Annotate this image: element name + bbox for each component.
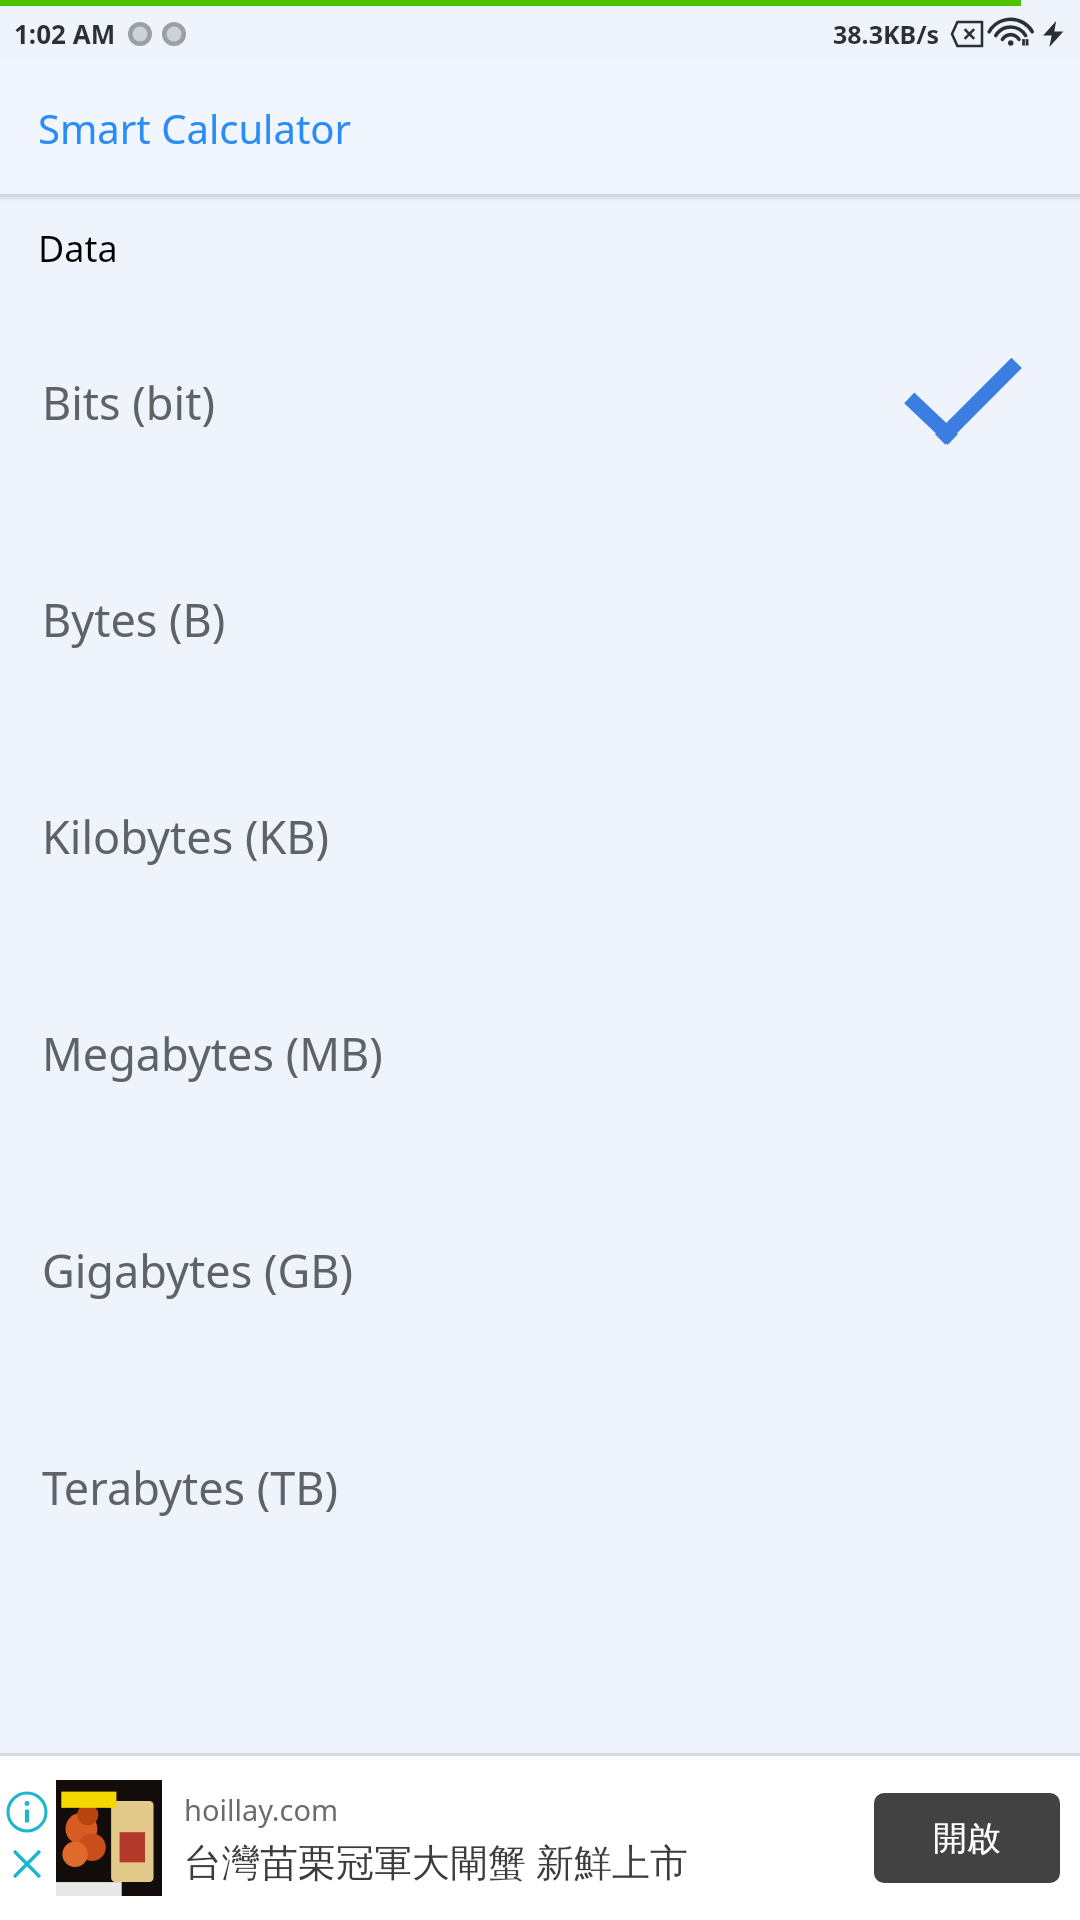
staticText: hoillay.com <box>184 1790 339 1829</box>
staticText: Gigabytes (GB) <box>42 1240 353 1301</box>
staticText: Data <box>38 224 118 273</box>
button[interactable]: Close ad <box>8 1845 46 1883</box>
staticText: 台灣苗栗冠軍大閘蟹 新鮮上市 <box>184 1835 688 1887</box>
staticText: Kilobytes (KB) <box>42 806 330 867</box>
button[interactable]: Kilobytes (KB) <box>0 728 1080 945</box>
button[interactable]: Bits (bit) <box>0 294 1080 511</box>
other: Selected <box>908 357 1018 449</box>
button[interactable]: Gigabytes (GB) <box>0 1162 1080 1379</box>
staticText: Smart Calculator <box>38 101 352 155</box>
staticText: 1:02 AM <box>14 16 116 51</box>
staticText: 開啟 <box>933 1817 1001 1860</box>
button[interactable]: Megabytes (MB) <box>0 945 1080 1162</box>
button[interactable]: 開啟 <box>874 1793 1060 1883</box>
staticText: Terabytes (TB) <box>42 1457 339 1518</box>
staticText: Megabytes (MB) <box>42 1023 383 1084</box>
staticText: Bits (bit) <box>42 372 215 433</box>
button[interactable]: Bytes (B) <box>0 511 1080 728</box>
button[interactable]: Terabytes (TB) <box>0 1379 1080 1596</box>
button[interactable]: Ad info <box>8 1793 46 1831</box>
staticText: Bytes (B) <box>42 589 226 650</box>
staticText: 38.3KB/s <box>833 17 940 51</box>
